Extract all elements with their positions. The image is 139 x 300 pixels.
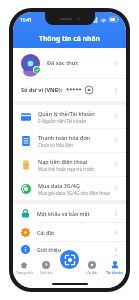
- staticText: *****: [66, 86, 82, 94]
- staticText: Thông tin cá nhân: [39, 34, 100, 43]
- staticText: Lịch sử: [40, 270, 52, 275]
- staticText: Thanh toán hóa đơn: [38, 134, 91, 141]
- button[interactable]: Đã xác thực: [13, 48, 126, 78]
- button[interactable]: Số dư ví (VNĐ):: [13, 79, 126, 101]
- button[interactable]: Nạp tiền điện thoại: [13, 153, 126, 176]
- staticText: Mua thẻ hoặc nạp trả trước: [38, 166, 95, 172]
- staticText: Mua data 3G/4G: [38, 182, 80, 189]
- button[interactable]: Tài khoản: [103, 256, 126, 280]
- staticText: Mua gói data 3G/4G cho điện thoại: [38, 190, 110, 196]
- button[interactable]: Hiện số dư: [85, 86, 93, 94]
- button[interactable]: Mua data 3G/4G: [13, 177, 126, 200]
- staticText: Trang chủ: [16, 270, 33, 275]
- staticText: Tài khoản: [106, 270, 123, 275]
- staticText: Số dư ví (VNĐ):: [21, 86, 63, 94]
- staticText: 11:41: [20, 17, 32, 23]
- button[interactable]: Giới thiệu: [13, 242, 126, 256]
- staticText: Mật khẩu và bảo mật: [37, 210, 90, 217]
- staticText: Giới thiệu: [37, 246, 62, 253]
- button[interactable]: Quản lý thẻ/Tài khoản: [13, 105, 126, 128]
- button[interactable]: Trang chủ: [13, 256, 35, 280]
- staticText: Cài đặt: [37, 229, 55, 236]
- button[interactable]: Mật khẩu và bảo mật: [13, 204, 126, 222]
- staticText: Chưa có hóa đơn: [38, 142, 74, 148]
- button[interactable]: Lịch sử: [35, 256, 57, 280]
- staticText: Ưu đãi: [86, 270, 98, 275]
- staticText: Quản lý thẻ/Tài khoản: [38, 110, 95, 117]
- staticText: 0 Nguồn tiền/Tài khoản: [38, 118, 87, 124]
- staticText: Nạp tiền điện thoại: [38, 158, 88, 165]
- button[interactable]: Ưu đãi: [80, 256, 103, 280]
- button[interactable]: Thanh toán hóa đơn: [13, 129, 126, 152]
- button[interactable]: Quét mã QR: [60, 250, 79, 269]
- staticText: Đã xác thực: [47, 59, 79, 67]
- button[interactable]: Cài đặt: [13, 223, 126, 241]
